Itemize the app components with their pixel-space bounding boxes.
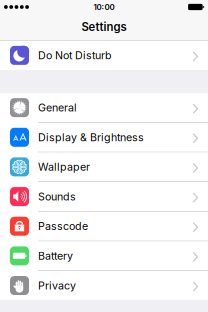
staticText: Sounds — [38, 190, 76, 203]
staticText: Settings — [81, 20, 126, 34]
button[interactable]: Passcode — [0, 212, 208, 241]
staticText: Passcode — [38, 220, 88, 233]
staticText: Display & Brightness — [38, 131, 144, 144]
button[interactable]: Privacy — [0, 271, 208, 300]
button[interactable]: Do Not Disturb — [0, 41, 208, 70]
staticText: General — [38, 101, 77, 114]
staticText: Privacy — [38, 279, 76, 292]
staticText: Wallpaper — [38, 160, 90, 173]
staticText: Do Not Disturb — [38, 49, 112, 62]
button[interactable]: Display & Brightness — [0, 123, 208, 152]
button[interactable]: Wallpaper — [0, 152, 208, 181]
button[interactable]: Sounds — [0, 182, 208, 211]
staticText: Battery — [38, 249, 73, 262]
button[interactable]: General — [0, 93, 208, 122]
staticText: 10:00 — [93, 2, 114, 12]
button[interactable]: Battery — [0, 241, 208, 270]
